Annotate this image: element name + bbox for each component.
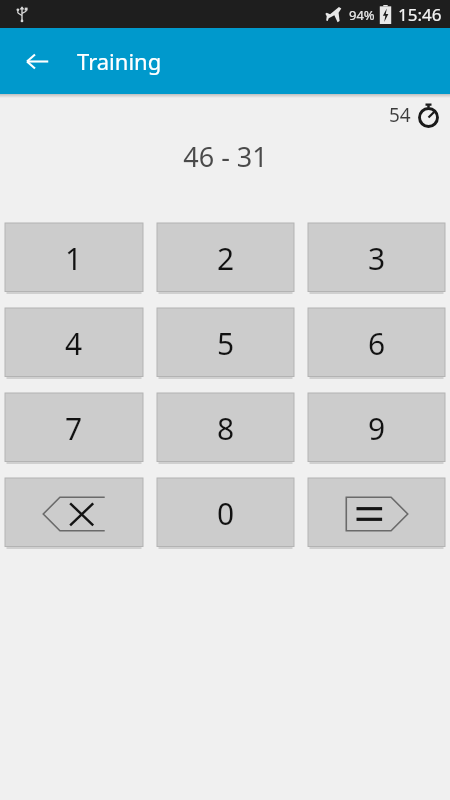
staticText: 4 bbox=[65, 323, 83, 364]
button[interactable]: Backspace bbox=[5, 478, 143, 549]
other: Equals bbox=[345, 495, 409, 533]
button[interactable]: 5 bbox=[157, 308, 294, 379]
button[interactable]: 0 bbox=[157, 478, 294, 549]
button[interactable]: 6 bbox=[308, 308, 445, 379]
staticText: 1 bbox=[65, 238, 83, 279]
staticText: 7 bbox=[65, 408, 83, 449]
staticText: 8 bbox=[217, 408, 235, 449]
button[interactable]: 2 bbox=[157, 223, 294, 294]
staticText: 2 bbox=[217, 238, 235, 279]
staticText: 54 bbox=[389, 102, 411, 128]
staticText: 15:46 bbox=[398, 3, 442, 26]
button[interactable]: Equals bbox=[308, 478, 445, 549]
other: Timer bbox=[416, 103, 441, 128]
button[interactable]: 1 bbox=[5, 223, 143, 294]
staticText: 5 bbox=[217, 323, 235, 364]
button[interactable]: 7 bbox=[5, 393, 143, 464]
button[interactable]: 9 bbox=[308, 393, 445, 464]
staticText: 94% bbox=[349, 6, 375, 24]
other: Backspace bbox=[42, 495, 106, 533]
button[interactable]: 8 bbox=[157, 393, 294, 464]
staticText: 46 - 31 bbox=[183, 138, 268, 175]
staticText: 6 bbox=[368, 323, 386, 364]
button[interactable]: 3 bbox=[308, 223, 445, 294]
staticText: Training bbox=[77, 46, 162, 76]
button[interactable]: 4 bbox=[5, 308, 143, 379]
staticText: 0 bbox=[217, 493, 235, 534]
staticText: 3 bbox=[368, 238, 386, 279]
button[interactable]: Back bbox=[14, 38, 60, 84]
staticText: 9 bbox=[368, 408, 386, 449]
